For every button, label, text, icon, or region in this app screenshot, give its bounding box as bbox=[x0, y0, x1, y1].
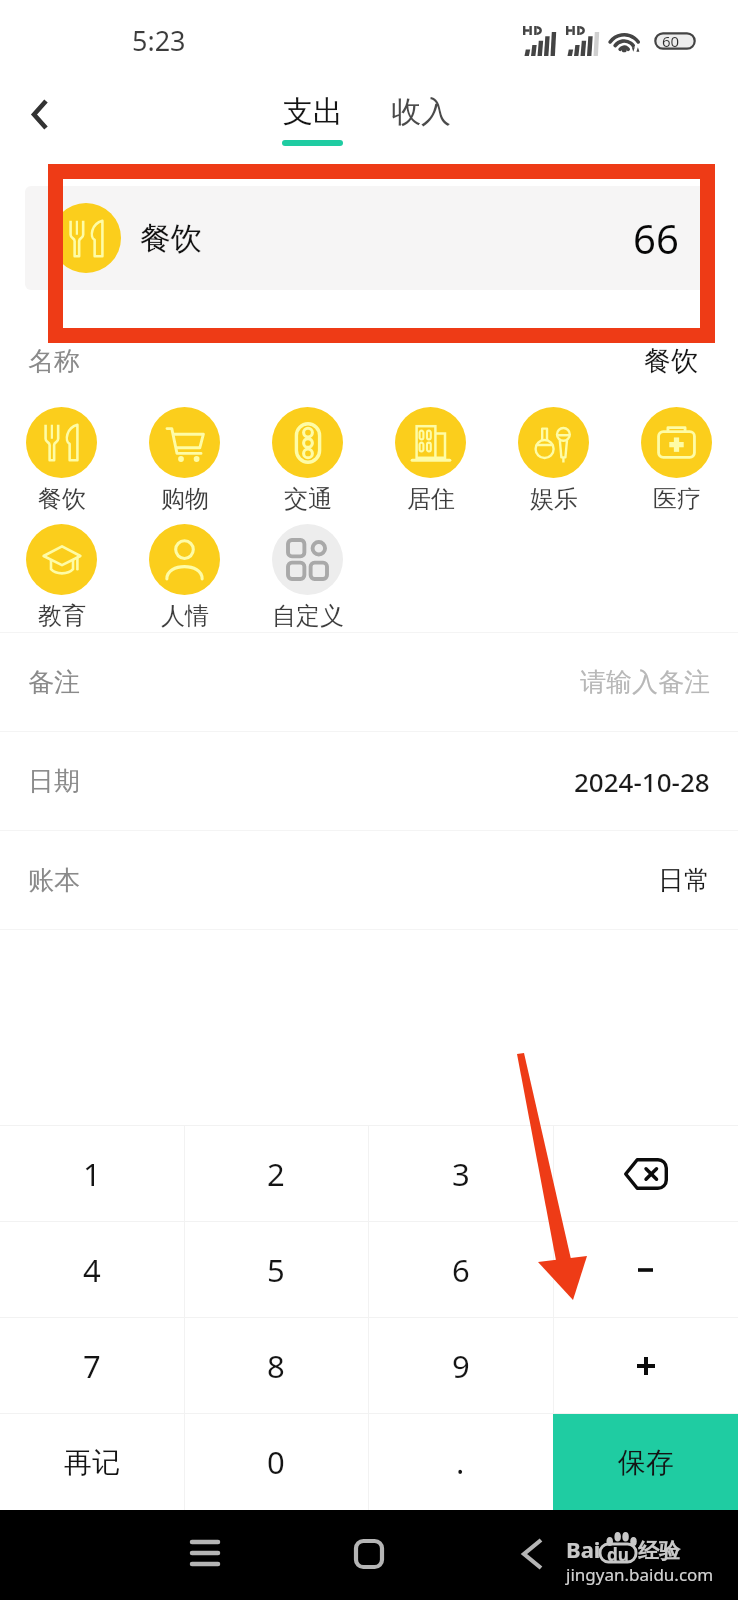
staticText: 餐饮 bbox=[644, 344, 698, 378]
staticText: 经验 bbox=[638, 1538, 680, 1564]
staticText: 娱乐 bbox=[530, 484, 578, 514]
staticText: 日常 bbox=[658, 864, 710, 897]
button[interactable]: 支出 bbox=[278, 93, 347, 146]
staticText: 收入 bbox=[391, 93, 451, 131]
button[interactable]: 5 bbox=[184, 1222, 368, 1318]
staticText: du bbox=[607, 1543, 629, 1566]
button[interactable]: 4 bbox=[0, 1222, 184, 1318]
button[interactable]: 居住 bbox=[369, 407, 492, 516]
staticText: 0 bbox=[267, 1441, 285, 1483]
button[interactable]: Delete bbox=[553, 1126, 738, 1222]
button[interactable]: 餐饮 bbox=[0, 407, 123, 516]
staticText: 备注 bbox=[28, 666, 80, 699]
button[interactable]: 收入 bbox=[387, 93, 455, 140]
button[interactable]: 备注 bbox=[0, 633, 738, 731]
button[interactable]: 9 bbox=[368, 1318, 553, 1414]
button[interactable]: 日期 bbox=[0, 732, 738, 830]
staticText: 名称 bbox=[28, 345, 80, 378]
button[interactable]: 娱乐 bbox=[492, 407, 615, 516]
staticText: Bai bbox=[566, 1534, 601, 1564]
staticText: . bbox=[456, 1441, 465, 1483]
staticText: 保存 bbox=[618, 1445, 674, 1480]
button[interactable]: Back bbox=[500, 1522, 564, 1586]
staticText: 6 bbox=[452, 1249, 470, 1291]
button[interactable]: Home bbox=[337, 1522, 401, 1586]
button[interactable]: Back bbox=[14, 88, 66, 140]
staticText: 2 bbox=[267, 1153, 285, 1195]
staticText: 7 bbox=[83, 1345, 101, 1387]
button[interactable]: 2 bbox=[184, 1126, 368, 1222]
button[interactable]: 教育 bbox=[0, 524, 123, 633]
button[interactable]: 保存 bbox=[553, 1414, 738, 1510]
staticText: 教育 bbox=[38, 601, 86, 631]
staticText: 4 bbox=[83, 1249, 101, 1291]
button[interactable]: 8 bbox=[184, 1318, 368, 1414]
staticText: 购物 bbox=[161, 484, 209, 514]
staticText: 居住 bbox=[407, 484, 455, 514]
staticText: jingyan.baidu.com bbox=[566, 1563, 714, 1586]
button[interactable]: 0 bbox=[184, 1414, 368, 1510]
button[interactable]: 自定义 bbox=[246, 524, 369, 633]
staticText: 交通 bbox=[284, 484, 332, 514]
button[interactable]: Recents bbox=[173, 1521, 237, 1585]
staticText: 餐饮 bbox=[38, 484, 86, 514]
staticText: 日期 bbox=[28, 765, 80, 798]
staticText: 人情 bbox=[161, 601, 209, 631]
button[interactable]: 购物 bbox=[123, 407, 246, 516]
staticText: 66 bbox=[633, 211, 679, 265]
staticText: 2024-10-28 bbox=[574, 764, 710, 799]
staticText: 餐饮 bbox=[140, 219, 202, 258]
staticText: 1 bbox=[83, 1153, 101, 1195]
staticText: 9 bbox=[452, 1345, 470, 1387]
staticText: 60 bbox=[662, 31, 680, 51]
staticText: 账本 bbox=[28, 864, 80, 897]
staticText: 3 bbox=[452, 1153, 470, 1195]
staticText: 请输入备注 bbox=[580, 666, 710, 699]
staticText: 8 bbox=[267, 1345, 285, 1387]
staticText: 5 bbox=[267, 1249, 285, 1291]
button[interactable]: 6 bbox=[368, 1222, 553, 1318]
button[interactable]: 餐饮 bbox=[25, 186, 710, 290]
button[interactable]: 3 bbox=[368, 1126, 553, 1222]
staticText: 自定义 bbox=[272, 601, 344, 631]
button[interactable]: 交通 bbox=[246, 407, 369, 516]
button[interactable]: 医疗 bbox=[615, 407, 738, 516]
button[interactable]: 再记 bbox=[0, 1414, 184, 1510]
staticText: 再记 bbox=[64, 1445, 120, 1480]
button[interactable]: 人情 bbox=[123, 524, 246, 633]
button[interactable]: Plus bbox=[553, 1318, 738, 1414]
button[interactable]: . bbox=[368, 1414, 553, 1510]
staticText: 支出 bbox=[283, 93, 343, 131]
button[interactable]: 7 bbox=[0, 1318, 184, 1414]
button[interactable]: 1 bbox=[0, 1126, 184, 1222]
staticText: 医疗 bbox=[653, 484, 701, 514]
staticText: 5:23 bbox=[132, 22, 186, 59]
button[interactable]: 账本 bbox=[0, 831, 738, 929]
button[interactable]: Minus bbox=[553, 1222, 738, 1318]
